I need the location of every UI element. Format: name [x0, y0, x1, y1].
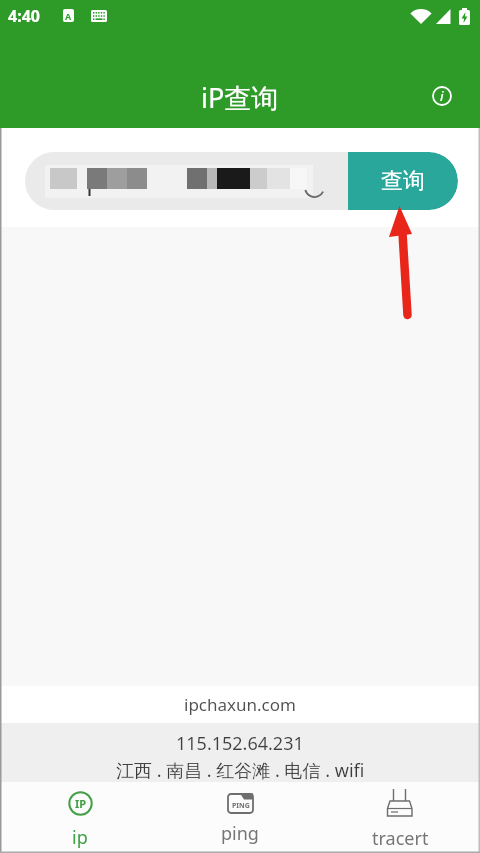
- staticText: ping: [221, 821, 259, 846]
- staticText: A: [65, 10, 72, 22]
- button[interactable]: tracert: [320, 782, 480, 853]
- staticText: 查询: [381, 167, 425, 195]
- button[interactable]: IP: [0, 782, 160, 853]
- staticText: ipchaxun.com: [184, 693, 296, 716]
- button[interactable]: i: [431, 85, 453, 107]
- button[interactable]: 查询: [348, 152, 458, 210]
- staticText: i: [440, 87, 444, 105]
- staticText: 115.152.64.231: [176, 731, 304, 756]
- staticText: PING: [232, 801, 250, 811]
- button[interactable]: PING: [160, 782, 320, 853]
- staticText: IP: [75, 796, 87, 811]
- staticText: tracert: [372, 826, 429, 851]
- button[interactable]: [25, 152, 458, 210]
- staticText: 江西 . 南昌 . 红谷滩 . 电信 . wifi: [116, 758, 365, 782]
- staticText: 4:40: [8, 5, 40, 27]
- staticText: ip: [72, 825, 88, 850]
- staticText: iP查询: [201, 79, 279, 116]
